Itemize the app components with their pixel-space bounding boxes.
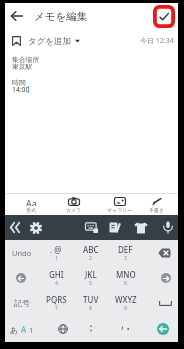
button[interactable] xyxy=(5,265,39,290)
staticText: ABC xyxy=(83,244,99,255)
staticText: 8 xyxy=(89,305,92,312)
button[interactable] xyxy=(143,290,178,316)
button[interactable] xyxy=(107,220,123,235)
button[interactable]: ギャラリー xyxy=(98,194,141,215)
button[interactable] xyxy=(7,220,22,235)
button[interactable]: GHI xyxy=(39,265,73,290)
staticText: PQRS xyxy=(46,294,67,305)
button[interactable] xyxy=(108,316,143,342)
staticText: 3 xyxy=(124,255,127,262)
staticText: MNO xyxy=(116,269,136,280)
button[interactable]: Undo xyxy=(5,240,39,265)
button[interactable]: . @ xyxy=(39,240,73,265)
button[interactable]: WXYZ xyxy=(108,290,143,316)
button[interactable] xyxy=(83,220,99,235)
staticText: Aa xyxy=(26,197,37,206)
staticText: 2 xyxy=(89,255,92,262)
button[interactable]: ABC xyxy=(73,240,108,265)
button[interactable]: MNO xyxy=(108,265,143,290)
staticText: DEF xyxy=(118,244,133,255)
staticText: 東京駅 xyxy=(12,62,33,71)
staticText: タグを追加 xyxy=(28,36,72,47)
button[interactable] xyxy=(157,323,169,335)
button[interactable]: Aa xyxy=(9,194,53,215)
staticText: TUV xyxy=(83,294,99,305)
staticText: 6 xyxy=(124,280,127,287)
staticText: 9 xyxy=(124,305,127,312)
button[interactable]: 手書き xyxy=(135,194,178,215)
button[interactable] xyxy=(161,273,171,283)
staticText: 形式 xyxy=(26,207,36,213)
staticText: . @ xyxy=(50,244,62,255)
button[interactable] xyxy=(16,273,26,283)
staticText: 今日 12:34 xyxy=(140,36,174,46)
button[interactable]: あ xyxy=(5,316,39,342)
staticText: 7 xyxy=(55,305,58,312)
button[interactable] xyxy=(143,265,178,290)
button[interactable]: JKL xyxy=(73,265,108,290)
button[interactable]: 記号 xyxy=(5,290,39,316)
button[interactable]: PQRS xyxy=(39,290,73,316)
button[interactable]: DEF xyxy=(108,240,143,265)
button[interactable] xyxy=(143,240,178,265)
button[interactable] xyxy=(143,316,178,342)
staticText: 時間 xyxy=(12,78,26,87)
button[interactable] xyxy=(160,219,176,236)
staticText: WXYZ xyxy=(115,294,137,305)
button[interactable]: タグを追加 xyxy=(5,29,178,53)
button[interactable]: TUV xyxy=(73,290,108,316)
button[interactable]: カメラ xyxy=(52,194,95,215)
staticText: 14:00 xyxy=(12,85,30,94)
staticText: GHI xyxy=(49,269,64,280)
button[interactable] xyxy=(133,220,149,235)
staticText: 記号 xyxy=(14,298,30,308)
staticText: メモを編集 xyxy=(34,10,88,23)
staticText: Undo xyxy=(12,248,32,258)
staticText: 1 xyxy=(29,325,34,335)
button[interactable] xyxy=(153,5,175,28)
staticText: 1 xyxy=(55,255,58,262)
button[interactable] xyxy=(7,6,27,26)
staticText: ギャラリー xyxy=(107,207,133,213)
staticText: あ xyxy=(10,325,19,335)
staticText: 手書き xyxy=(149,207,165,213)
button[interactable] xyxy=(73,316,108,342)
staticText: A xyxy=(21,324,27,335)
staticText: 5 xyxy=(89,280,92,287)
staticText: 4 xyxy=(55,280,58,287)
button[interactable] xyxy=(39,316,73,342)
button[interactable] xyxy=(27,219,44,236)
staticText: 集合場所 xyxy=(12,55,40,64)
staticText: JKL xyxy=(85,269,97,280)
staticText: カメラ xyxy=(66,207,82,213)
